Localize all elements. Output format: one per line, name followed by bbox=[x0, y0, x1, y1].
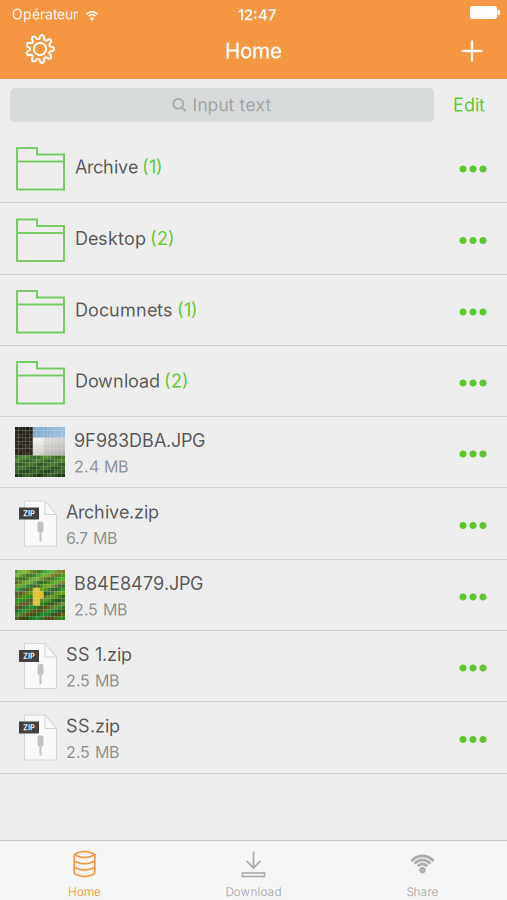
staticText: SS 1.zip bbox=[66, 644, 132, 665]
button[interactable]: More options bbox=[439, 631, 507, 701]
button[interactable]: Download bbox=[0, 346, 507, 417]
button[interactable]: Desktop bbox=[0, 203, 507, 275]
staticText: 2.5 MB bbox=[74, 600, 127, 619]
staticText: Home bbox=[68, 885, 101, 899]
staticText: (1) bbox=[177, 299, 198, 321]
staticText: SS.zip bbox=[66, 715, 120, 737]
staticText: 9F983DBA.JPG bbox=[74, 430, 205, 451]
staticText: (2) bbox=[164, 370, 189, 392]
button[interactable]: Home bbox=[0, 841, 169, 900]
staticText: Edit bbox=[453, 94, 485, 116]
button[interactable]: Download bbox=[169, 841, 338, 900]
button[interactable]: More options bbox=[439, 346, 507, 416]
staticText: 2.5 MB bbox=[66, 742, 119, 762]
staticText: Opérateur bbox=[12, 6, 78, 23]
staticText: Download bbox=[75, 370, 160, 392]
staticText: Download bbox=[225, 885, 281, 899]
staticText: Home bbox=[225, 38, 282, 63]
button[interactable]: More options bbox=[439, 417, 507, 487]
button[interactable]: 9F983DBA.JPG bbox=[0, 417, 507, 488]
staticText: Archive.zip bbox=[66, 501, 159, 523]
staticText: ZIP bbox=[23, 509, 35, 518]
button[interactable]: ZIP bbox=[0, 702, 507, 774]
button[interactable]: Add bbox=[444, 26, 500, 76]
staticText: 2.5 MB bbox=[66, 671, 119, 690]
staticText: 12:47 bbox=[238, 6, 276, 24]
button[interactable]: More options bbox=[439, 275, 507, 345]
staticText: ZIP bbox=[23, 651, 35, 660]
button[interactable]: B84E8479.JPG bbox=[0, 560, 507, 631]
button[interactable]: More options bbox=[439, 203, 507, 273]
button[interactable]: Archive bbox=[0, 132, 507, 203]
button[interactable]: ZIP bbox=[0, 631, 507, 702]
staticText: (2) bbox=[150, 228, 175, 249]
staticText: (1) bbox=[142, 156, 163, 178]
button[interactable]: More options bbox=[439, 488, 507, 558]
staticText: Share bbox=[406, 885, 438, 899]
staticText: 2.4 MB bbox=[74, 457, 128, 476]
button[interactable]: More options bbox=[439, 702, 507, 772]
staticText: Desktop bbox=[75, 228, 146, 249]
staticText: ZIP bbox=[23, 723, 35, 732]
button[interactable]: More options bbox=[439, 560, 507, 630]
button[interactable]: Settings bbox=[12, 24, 68, 74]
button[interactable]: Documnets bbox=[0, 275, 507, 346]
staticText: 6.7 MB bbox=[66, 528, 117, 548]
button[interactable]: ZIP bbox=[0, 488, 507, 560]
staticText: Documnets bbox=[75, 299, 173, 321]
button[interactable]: Edit bbox=[438, 85, 500, 125]
staticText: Input text bbox=[192, 94, 271, 115]
button[interactable]: Share bbox=[338, 841, 507, 900]
staticText: Archive bbox=[75, 156, 138, 178]
button[interactable]: More options bbox=[439, 132, 507, 202]
button[interactable]: Input text bbox=[10, 88, 434, 122]
staticText: B84E8479.JPG bbox=[74, 573, 203, 594]
